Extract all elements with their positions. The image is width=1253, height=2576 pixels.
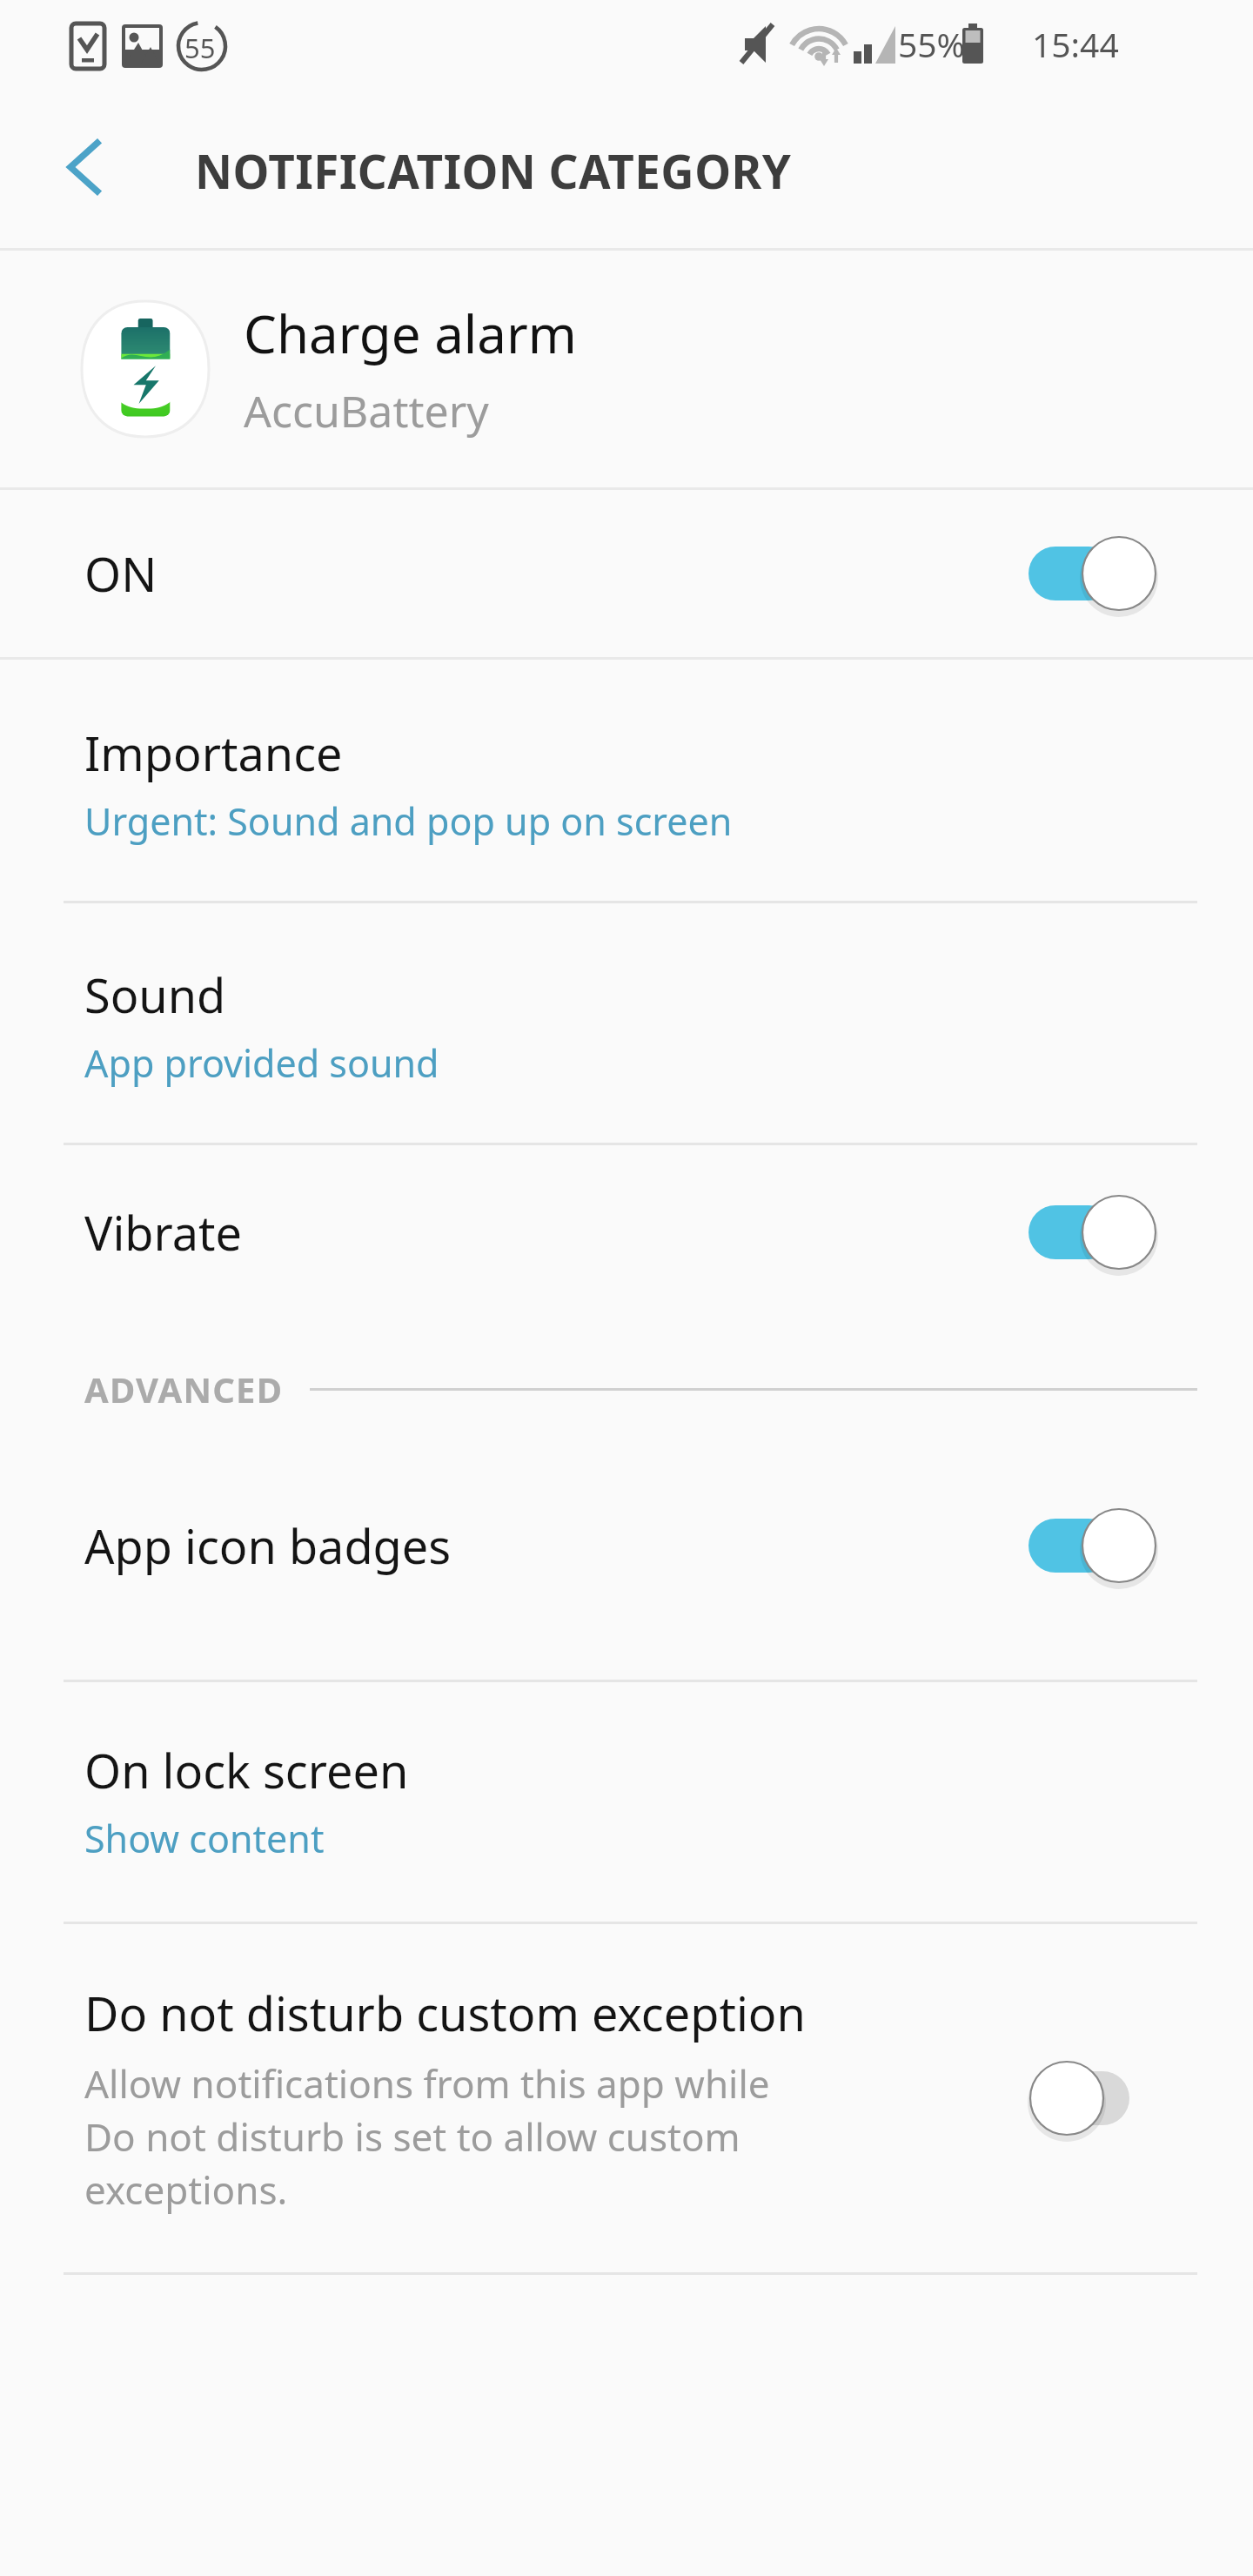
button[interactable]: ON <box>0 490 1253 657</box>
button[interactable]: App icon badges <box>0 1459 1253 1633</box>
staticText: 55% <box>898 21 966 67</box>
button[interactable]: On lock screen <box>0 1738 1253 1864</box>
button[interactable]: On <box>1029 1502 1159 1589</box>
staticText: Allow notifications from this app while … <box>84 2057 770 2216</box>
staticText: Importance <box>84 721 343 785</box>
button[interactable]: Importance <box>0 721 1253 847</box>
button[interactable]: Navigate up <box>38 118 136 216</box>
staticText: Do not disturb custom exception <box>84 1981 806 2045</box>
staticText: NOTIFICATION CATEGORY <box>195 139 792 202</box>
staticText: Vibrate <box>84 1200 243 1265</box>
staticText: App icon badges <box>84 1513 452 1578</box>
button[interactable]: Sound <box>0 963 1253 1089</box>
staticText: Charge alarm <box>244 298 577 369</box>
button[interactable]: Charge alarm <box>0 251 1253 487</box>
staticText: On lock screen <box>84 1738 409 1802</box>
staticText: App provided sound <box>84 1037 439 1089</box>
button[interactable]: Vibrate <box>0 1145 1253 1319</box>
staticText: Sound <box>84 963 226 1027</box>
staticText: Show content <box>84 1813 325 1864</box>
staticText: Urgent: Sound and pop up on screen <box>84 795 733 847</box>
button[interactable]: On <box>1029 1189 1159 1276</box>
button[interactable]: Off <box>1029 2055 1159 2142</box>
staticText: ON <box>84 541 157 606</box>
staticText: 15:44 <box>1032 21 1119 67</box>
staticText: 55 <box>184 30 216 66</box>
button[interactable]: On <box>1029 530 1159 617</box>
staticText: AccuBattery <box>244 381 489 440</box>
staticText: ADVANCED <box>84 1365 284 1412</box>
button[interactable]: Do not disturb custom exception <box>0 1924 1253 2272</box>
